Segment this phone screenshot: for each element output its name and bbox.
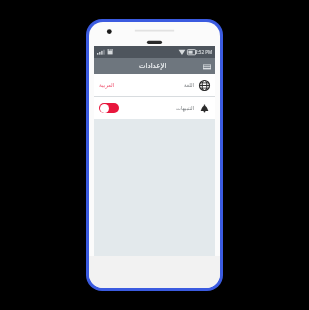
staticText: العربية bbox=[99, 82, 115, 89]
staticText: الإعدادات bbox=[139, 62, 167, 70]
button[interactable]: Notifications toggle bbox=[94, 97, 215, 119]
button[interactable]: Notifications toggle bbox=[99, 103, 119, 113]
button[interactable]: Menu bbox=[201, 61, 212, 72]
button[interactable]: العربية bbox=[94, 74, 215, 96]
staticText: 2:52 PM bbox=[195, 49, 213, 55]
staticText: اللغة bbox=[184, 82, 195, 88]
staticText: التنبيهات bbox=[176, 105, 195, 111]
